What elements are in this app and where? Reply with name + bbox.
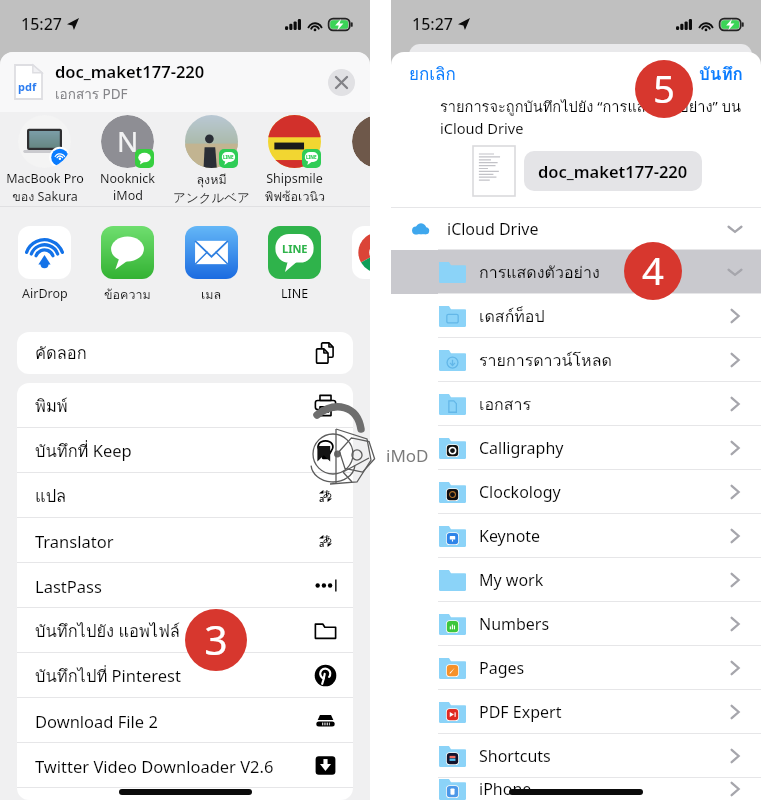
staticText: iCloud Drive	[440, 118, 524, 138]
button[interactable]: PDF Expert	[391, 690, 761, 734]
staticText: บันทึกไปที่ Pinterest	[35, 663, 314, 689]
staticText: a	[319, 492, 325, 504]
staticText: การแสดงตัวอย่าง	[479, 260, 728, 285]
staticText: LINE	[306, 154, 317, 160]
staticText: ยกเลิก	[409, 60, 456, 87]
staticText: iMod	[113, 187, 143, 204]
staticText: เอกสาร	[479, 392, 728, 417]
button[interactable]: เอกสาร	[391, 382, 761, 426]
staticText: 15:27	[21, 13, 62, 35]
staticText: 3	[204, 611, 228, 667]
button[interactable]: ยกเลิก	[391, 54, 466, 93]
staticText: iMoD	[386, 444, 429, 467]
staticText	[35, 788, 314, 800]
button[interactable]: Clockology	[391, 470, 761, 514]
staticText: 15:27	[412, 13, 453, 35]
staticText: アンクルベア®	[170, 190, 253, 206]
button[interactable]: iCloud Drive	[391, 208, 761, 250]
staticText: ข้อความ	[104, 285, 151, 305]
staticText: Pages	[479, 657, 728, 679]
button[interactable]: บันทึกที่ Keep	[17, 428, 353, 473]
button[interactable]: คัดลอก	[17, 332, 353, 374]
staticText: MacBook Pro	[6, 170, 84, 187]
staticText: Nooknick	[100, 170, 155, 187]
staticText: LINE	[281, 285, 309, 302]
button[interactable]: doc_maket177-220	[524, 151, 702, 191]
button[interactable]: การแสดงตัวอย่าง	[391, 250, 761, 294]
staticText: Translator	[35, 530, 314, 552]
staticText: Calligraphy	[479, 437, 728, 459]
button[interactable]: พิมพ์	[17, 383, 353, 428]
staticText: LastPass	[35, 575, 314, 597]
button[interactable]: Translator	[17, 518, 353, 563]
staticText: เอกสาร PDF	[55, 83, 128, 104]
staticText: pdf	[18, 79, 37, 94]
button[interactable]: Download File 2	[17, 698, 353, 743]
staticText: N	[117, 122, 139, 160]
staticText: บันทึก	[699, 60, 743, 87]
staticText: ของ Sakura	[12, 187, 78, 206]
staticText: iPhone	[479, 778, 728, 800]
button[interactable]: AirDrop	[3, 226, 86, 302]
button[interactable]: รายการดาวน์โหลด	[391, 338, 761, 382]
button[interactable]: Numbers	[391, 602, 761, 646]
staticText: ลุงหมี	[196, 170, 227, 190]
staticText: เมล	[201, 285, 222, 305]
button[interactable]: Close	[328, 69, 355, 96]
button[interactable]: Shortcuts	[391, 734, 761, 778]
button[interactable]: C	[337, 226, 370, 302]
staticText: My work	[479, 569, 728, 591]
staticText: รายการดาวน์โหลด	[479, 348, 728, 373]
button[interactable]: ข้อความ	[86, 226, 169, 305]
button[interactable]: Twitter Video Downloader V2.6	[17, 743, 353, 788]
button[interactable]: LINE	[253, 226, 336, 302]
staticText: Numbers	[479, 613, 728, 635]
staticText: あ	[323, 533, 333, 544]
button[interactable]: LastPass	[17, 563, 353, 608]
staticText: Keynote	[479, 525, 728, 547]
staticText: PDF Expert	[479, 701, 728, 723]
button[interactable]: บันทึกไปยัง แอพไฟล์	[17, 608, 353, 653]
staticText: doc_maket177-220	[55, 60, 205, 82]
button[interactable]: Pages	[391, 646, 761, 690]
staticText: LINE	[282, 241, 308, 256]
staticText: Download File 2	[35, 710, 314, 732]
staticText: บันทึกที่ Keep	[35, 438, 314, 464]
staticText: Shipsmile	[266, 170, 323, 187]
staticText: Shortcuts	[479, 745, 728, 767]
staticText: a	[319, 537, 325, 549]
button[interactable]: บันทึก	[689, 54, 761, 93]
button[interactable]: LINE	[253, 115, 336, 206]
staticText: บันทึกไปยัง แอพไฟล์	[35, 618, 314, 644]
button[interactable]: Calligraphy	[391, 426, 761, 470]
button[interactable]: Keynote	[391, 514, 761, 558]
button[interactable]: LINE	[170, 115, 253, 206]
staticText: LINE	[223, 154, 234, 160]
staticText: Twitter Video Downloader V2.6	[35, 755, 314, 777]
button[interactable]: บันทึกไปที่ Pinterest	[17, 653, 353, 698]
button[interactable]: แปล	[17, 473, 353, 518]
button[interactable]: pdf	[0, 52, 370, 112]
button[interactable]: MacBook Pro	[3, 115, 86, 206]
button[interactable]: My work	[391, 558, 761, 602]
staticText: 4	[642, 244, 664, 296]
button[interactable]: N	[86, 115, 169, 204]
staticText: iCloud Drive	[447, 218, 728, 240]
staticText: あ	[323, 488, 333, 499]
staticText: doc_maket177-220	[538, 160, 688, 182]
staticText: รายการจะถูกบันทึกไปยัง “การแสดงตัวอย่าง”…	[440, 95, 741, 118]
staticText: แปล	[35, 483, 314, 509]
staticText: เดสก์ท็อป	[479, 304, 728, 329]
staticText: Clockology	[479, 481, 728, 503]
staticText: คัดลอก	[35, 340, 314, 366]
button[interactable]	[17, 788, 353, 800]
staticText: AirDrop	[22, 285, 68, 302]
button[interactable]: เมล	[170, 226, 253, 305]
staticText: 5	[653, 62, 675, 114]
staticText: พิฟซ้อเวนิว	[265, 187, 325, 206]
button[interactable]: M	[337, 115, 370, 187]
staticText: พิมพ์	[35, 393, 314, 419]
button[interactable]: iPhone	[391, 778, 761, 800]
button[interactable]: เดสก์ท็อป	[391, 294, 761, 338]
